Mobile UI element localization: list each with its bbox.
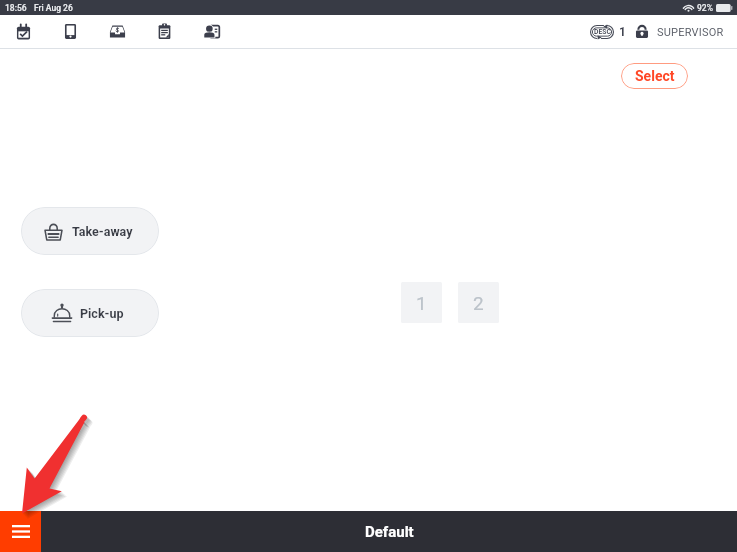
- button[interactable]: Menu: [0, 511, 41, 552]
- button[interactable]: Select: [621, 63, 688, 89]
- staticText: SUPERVISOR: [657, 26, 724, 39]
- staticText: Take-away: [72, 224, 133, 239]
- staticText: Fri Aug 26: [34, 3, 73, 13]
- button[interactable]: 2: [458, 282, 499, 323]
- button[interactable]: Sort descending: [590, 25, 614, 39]
- staticText: 1: [416, 292, 427, 314]
- staticText: 2: [473, 292, 484, 314]
- button[interactable]: Reservations: [0, 15, 47, 48]
- staticText: Pick-up: [80, 306, 124, 321]
- button[interactable]: Take-away: [21, 207, 159, 255]
- button[interactable]: 1: [401, 282, 442, 323]
- staticText: Select: [635, 68, 675, 84]
- button[interactable]: Cash drawer: [94, 15, 141, 48]
- button[interactable]: SUPERVISOR: [635, 25, 724, 39]
- button[interactable]: Orders: [141, 15, 188, 48]
- staticText: 1: [619, 25, 626, 39]
- staticText: Default: [365, 523, 414, 541]
- staticText: 18:56: [5, 3, 27, 13]
- button[interactable]: Device: [47, 15, 94, 48]
- staticText: DESC: [594, 28, 611, 36]
- staticText: 92%: [697, 3, 713, 13]
- button[interactable]: Staff: [188, 15, 235, 48]
- button[interactable]: Pick-up: [21, 289, 159, 337]
- button[interactable]: Default: [41, 511, 737, 552]
